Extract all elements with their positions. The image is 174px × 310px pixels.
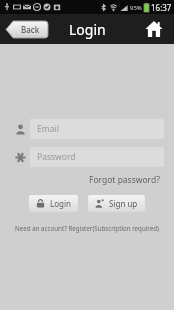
staticText: Sign up xyxy=(109,198,138,209)
button[interactable]: Sign up xyxy=(88,195,145,212)
staticText: Password xyxy=(37,151,76,163)
staticText: 16:37 xyxy=(151,2,172,13)
staticText: Back xyxy=(21,24,40,35)
button[interactable]: Email xyxy=(10,119,164,139)
button[interactable]: Forgot password? xyxy=(87,172,162,188)
staticText: Forgot password? xyxy=(89,174,160,186)
button[interactable]: Back xyxy=(6,21,48,38)
staticText: Login xyxy=(50,198,71,209)
button[interactable]: Home xyxy=(142,17,166,41)
staticText: Need an account? Register(Subscription r… xyxy=(15,224,159,232)
button[interactable]: Need an account? Register(Subscription r… xyxy=(13,222,161,234)
staticText: Login xyxy=(69,20,106,39)
button[interactable]: Password xyxy=(10,147,164,167)
button[interactable]: Login xyxy=(29,195,78,212)
staticText: Email xyxy=(37,123,59,135)
staticText: 95% xyxy=(130,4,142,12)
